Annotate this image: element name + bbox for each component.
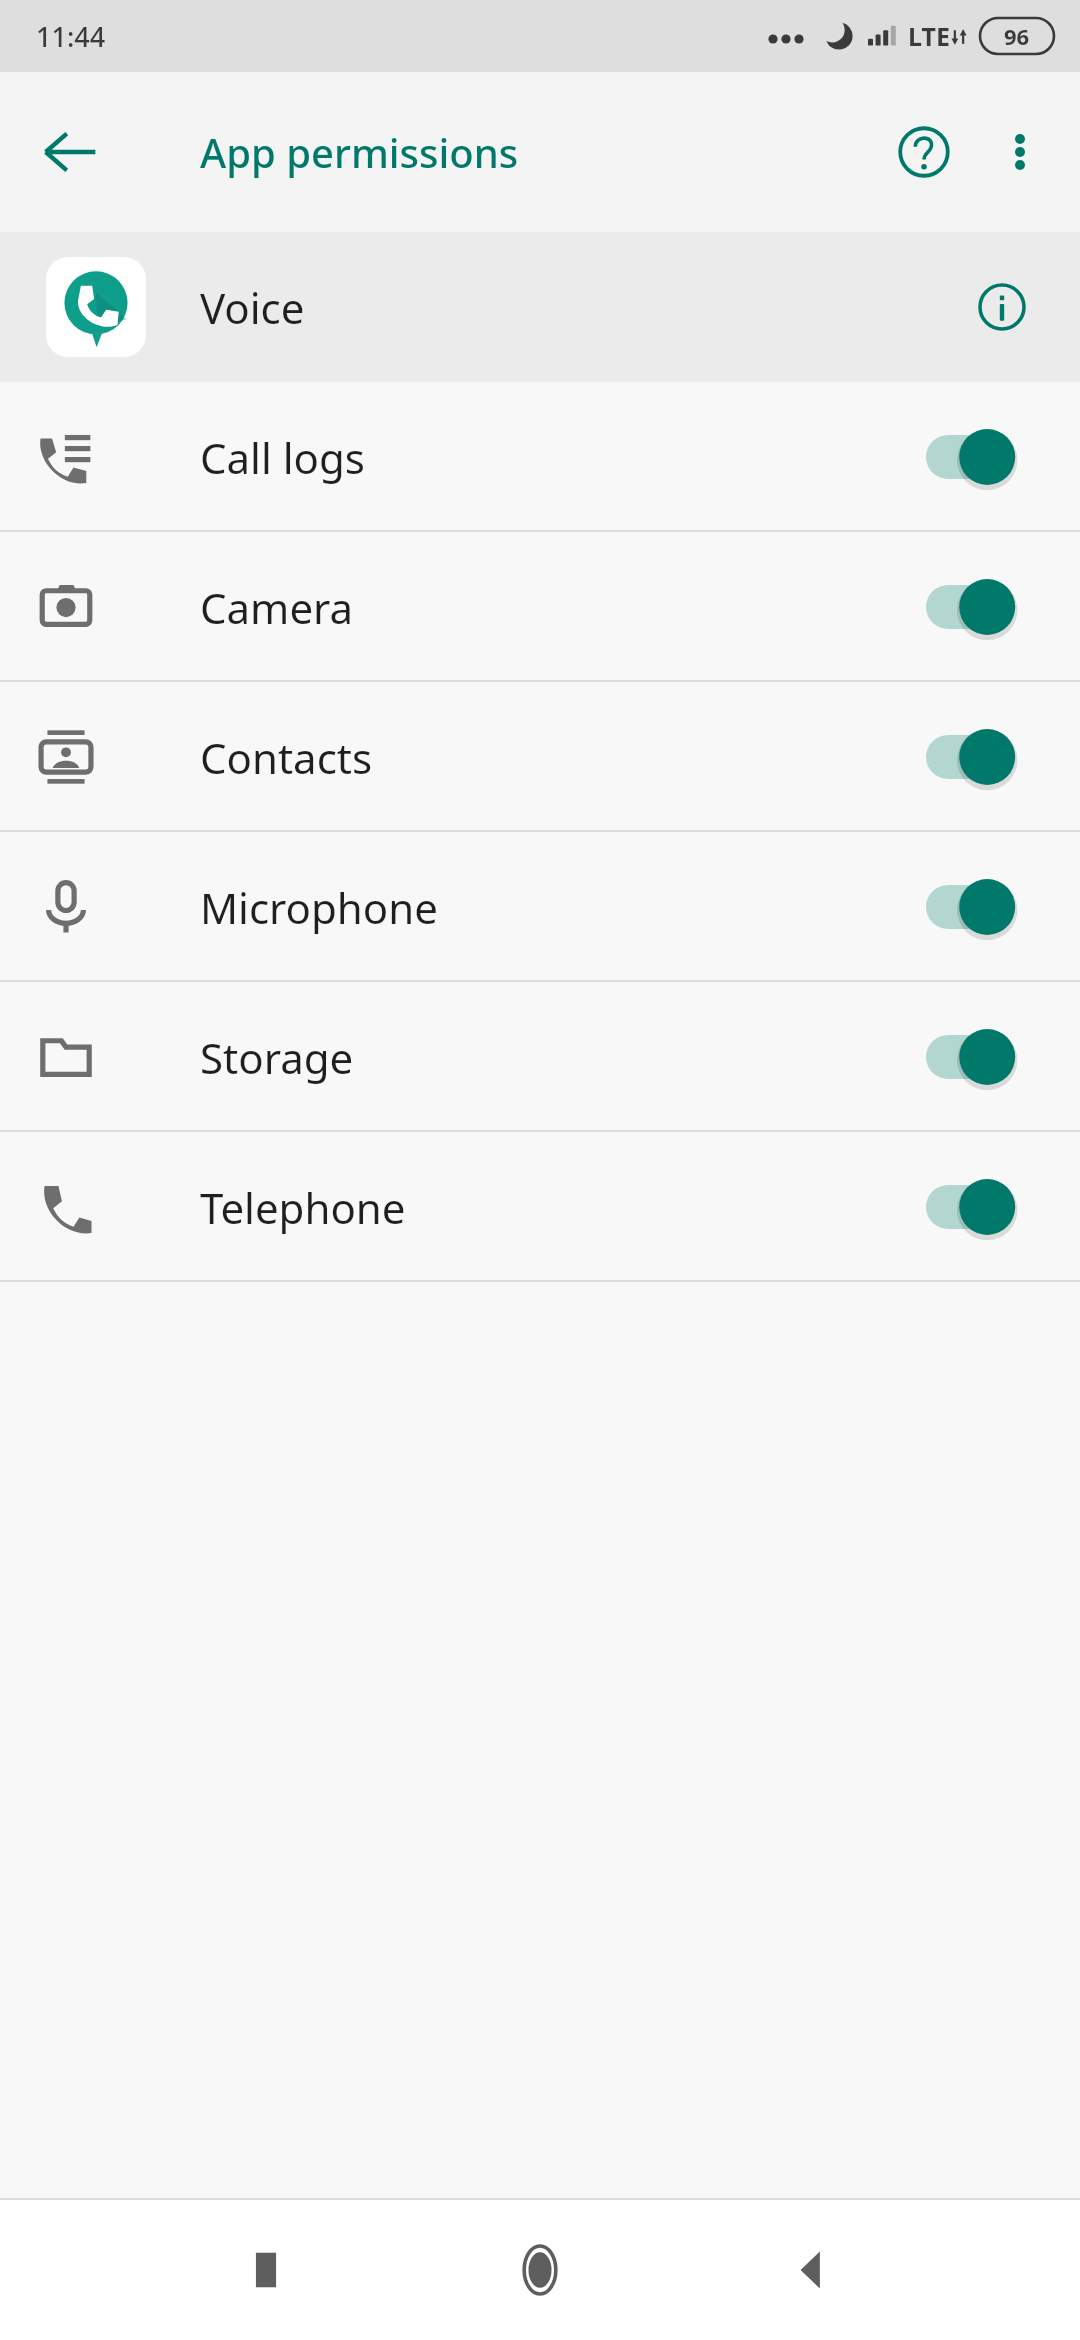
- button[interactable]: Telephone: [0, 1132, 1080, 1282]
- staticText: 11:44: [36, 18, 106, 55]
- button[interactable]: Call logs: [0, 382, 1080, 532]
- button[interactable]: App info: [960, 265, 1044, 349]
- button[interactable]: Back: [20, 102, 120, 202]
- button[interactable]: Telephone permission: [912, 1159, 1052, 1255]
- button[interactable]: Microphone: [0, 832, 1080, 982]
- staticText: Microphone: [200, 879, 438, 936]
- staticText: 96: [1004, 21, 1030, 51]
- staticText: Telephone: [200, 1179, 406, 1236]
- button[interactable]: Storage permission: [912, 1009, 1052, 1105]
- button[interactable]: Help: [874, 102, 974, 202]
- button[interactable]: Camera permission: [912, 559, 1052, 655]
- button[interactable]: More options: [974, 106, 1066, 198]
- button[interactable]: Voice: [0, 232, 1080, 382]
- button[interactable]: Recent apps: [210, 2214, 322, 2326]
- button[interactable]: Back: [758, 2214, 870, 2326]
- staticText: Voice: [200, 279, 305, 336]
- staticText: Camera: [200, 579, 354, 636]
- button[interactable]: Storage: [0, 982, 1080, 1132]
- button[interactable]: Microphone permission: [912, 859, 1052, 955]
- staticText: Storage: [200, 1029, 354, 1086]
- button[interactable]: Camera: [0, 532, 1080, 682]
- staticText: LTE: [908, 19, 950, 53]
- button[interactable]: Contacts permission: [912, 709, 1052, 805]
- button[interactable]: Call logs permission: [912, 409, 1052, 505]
- staticText: Contacts: [200, 729, 373, 786]
- button[interactable]: Contacts: [0, 682, 1080, 832]
- staticText: Call logs: [200, 429, 365, 486]
- staticText: App permissions: [200, 125, 519, 179]
- button[interactable]: Home: [484, 2214, 596, 2326]
